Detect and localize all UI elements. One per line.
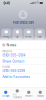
- staticText: Florence Ion: [12, 20, 33, 25]
- staticText: (415) 555-2209: [2, 69, 25, 73]
- staticText: Keypad: [37, 95, 43, 97]
- button[interactable]: All Contacts: [11, 89, 23, 99]
- staticText: Share Contact: [2, 59, 24, 63]
- button[interactable]: Recents: [23, 91, 34, 97]
- button[interactable]: Add to Favourites: [0, 73, 46, 80]
- button[interactable]: video: [23, 29, 34, 39]
- button[interactable]: home: [0, 65, 46, 73]
- staticText: mobile: [2, 50, 12, 53]
- button[interactable]: mobile: [0, 49, 46, 58]
- button[interactable]: Groups: [0, 91, 11, 97]
- staticText: (510) 555-0134: [2, 53, 25, 57]
- button[interactable]: Notes: [0, 41, 46, 49]
- staticText: Notes: [7, 43, 17, 47]
- staticText: video: [25, 35, 32, 38]
- staticText: All Contacts: [13, 93, 22, 99]
- staticText: 9:41: [3, 1, 10, 5]
- button[interactable]: call: [12, 29, 22, 39]
- staticText: wifi: [34, 2, 39, 4]
- staticText: Add to Favourites: [2, 75, 30, 79]
- button[interactable]: mail: [35, 29, 45, 39]
- staticText: call: [15, 35, 19, 38]
- staticText: mail: [37, 35, 42, 38]
- button[interactable]: Keypad: [34, 91, 46, 97]
- staticText: message: [2, 35, 11, 38]
- staticText: Groups: [2, 95, 9, 97]
- button[interactable]: message: [1, 29, 11, 39]
- staticText: Recents: [25, 95, 32, 97]
- staticText: home: [2, 65, 10, 68]
- button[interactable]: Share Contact: [0, 58, 46, 64]
